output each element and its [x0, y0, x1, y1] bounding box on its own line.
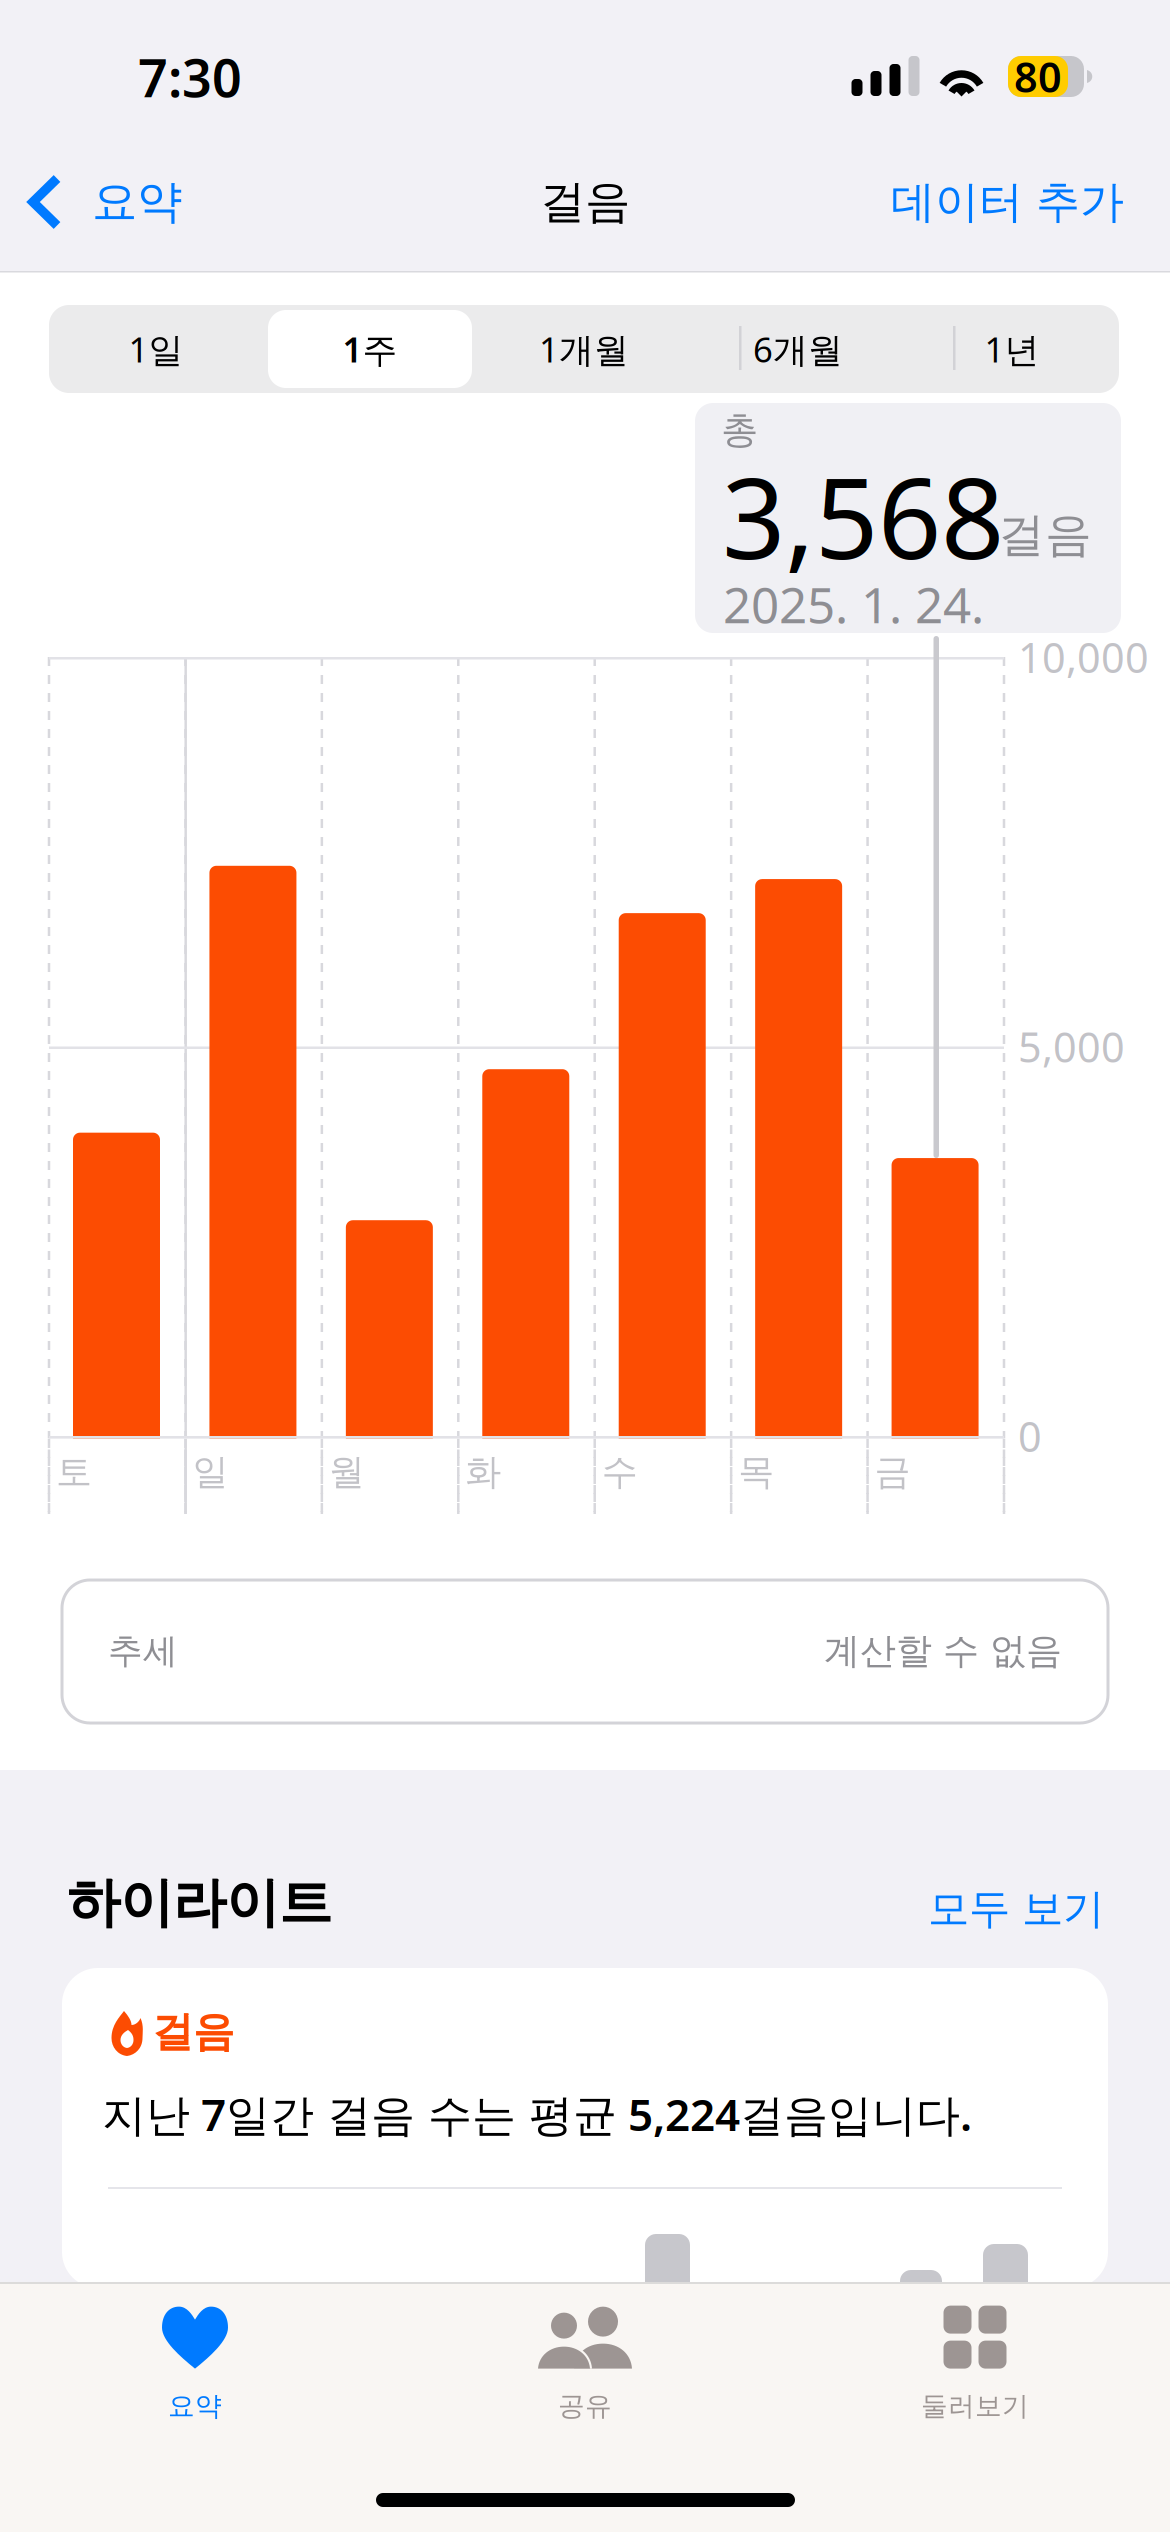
button[interactable]: 추세 [62, 1580, 1108, 1723]
button[interactable]: 공유 [390, 2294, 780, 2434]
staticText: 1년 [984, 326, 1039, 372]
button[interactable]: 데이터 추가 [891, 157, 1170, 247]
staticText: 5,000 [1018, 1019, 1125, 1074]
staticText: 80 [1014, 49, 1062, 104]
staticText: 걸음 [540, 174, 630, 230]
button[interactable]: 요약 [0, 2294, 390, 2434]
staticText: 0 [1018, 1409, 1042, 1463]
staticText: 걸음 [152, 2007, 234, 2057]
button[interactable]: 모두 보기 [0, 0, 1170, 2532]
staticText: 6개월 [753, 326, 843, 372]
staticText: 3,568 [722, 442, 1004, 589]
staticText: 2025. 1. 24. [723, 571, 984, 637]
staticText: 일 [192, 1450, 228, 1494]
button[interactable]: 요약 [0, 155, 182, 248]
button[interactable]: 1년 [905, 305, 1119, 393]
staticText: 목 [738, 1450, 774, 1494]
staticText: 하이라이트 [67, 1870, 332, 1936]
staticText: 데이터 추가 [891, 175, 1124, 229]
staticText: 걸음 [998, 506, 1092, 564]
staticText: 1주 [342, 326, 397, 372]
staticText: 토 [56, 1450, 92, 1494]
staticText: 요약 [168, 2390, 222, 2422]
staticText: 월 [329, 1450, 365, 1494]
button[interactable]: 걸음 [62, 1968, 1108, 2288]
staticText: 1일 [128, 326, 183, 372]
staticText: 추세 [108, 1630, 178, 1672]
staticText: 10,000 [1018, 630, 1149, 684]
staticText: 총 [721, 407, 758, 453]
button[interactable]: 1개월 [477, 305, 691, 393]
button[interactable]: 1주 [263, 305, 477, 393]
staticText: 둘러보기 [921, 2390, 1029, 2422]
staticText: 지난 7일간 걸음 수는 평균 5,224걸음입니다. [102, 2085, 972, 2143]
staticText: 금 [875, 1450, 911, 1494]
staticText: 수 [602, 1450, 638, 1494]
staticText: 요약 [92, 174, 182, 230]
staticText: 모두 보기 [928, 1884, 1104, 1934]
button[interactable]: 둘러보기 [780, 2294, 1170, 2434]
button[interactable]: 1일 [49, 305, 263, 393]
staticText: 공유 [558, 2390, 612, 2422]
staticText: 화 [465, 1450, 501, 1494]
button[interactable]: 6개월 [691, 305, 905, 393]
staticText: 계산할 수 없음 [824, 1629, 1062, 1673]
staticText: 7:30 [138, 42, 242, 112]
staticText: 1개월 [539, 326, 629, 372]
